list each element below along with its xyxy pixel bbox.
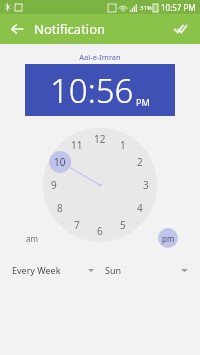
staticText: pm: [162, 233, 175, 244]
staticText: Every Week: [12, 264, 61, 276]
button[interactable]: Back: [6, 18, 28, 40]
staticText: Sun: [105, 264, 122, 276]
staticText: Aal-e-Imran: [79, 52, 121, 62]
staticText: 10: [54, 155, 66, 169]
staticText: 3: [143, 178, 149, 192]
staticText: 10:57 PM: [161, 2, 196, 13]
staticText: 2: [137, 155, 143, 169]
staticText: 5: [120, 218, 126, 232]
button[interactable]: Every Week: [12, 264, 95, 276]
button[interactable]: pm: [158, 228, 178, 248]
staticText: Notification: [34, 20, 106, 38]
staticText: 1: [120, 138, 126, 152]
button[interactable]: Sun: [105, 264, 188, 276]
staticText: 12: [94, 132, 106, 146]
staticText: PM: [136, 96, 150, 108]
button[interactable]: Done all: [169, 17, 193, 41]
staticText: 9: [51, 178, 57, 192]
staticText: 6: [97, 224, 103, 238]
button[interactable]: [43, 128, 157, 242]
staticText: 7: [74, 218, 80, 232]
button[interactable]: am: [22, 228, 42, 248]
staticText: am: [26, 233, 38, 244]
staticText: 4: [137, 201, 143, 215]
staticText: 11: [71, 138, 83, 152]
staticText: 8: [57, 201, 63, 215]
button[interactable]: 10:56: [25, 64, 175, 116]
staticText: 10:56: [50, 68, 134, 113]
staticText: 31%: [140, 4, 152, 12]
